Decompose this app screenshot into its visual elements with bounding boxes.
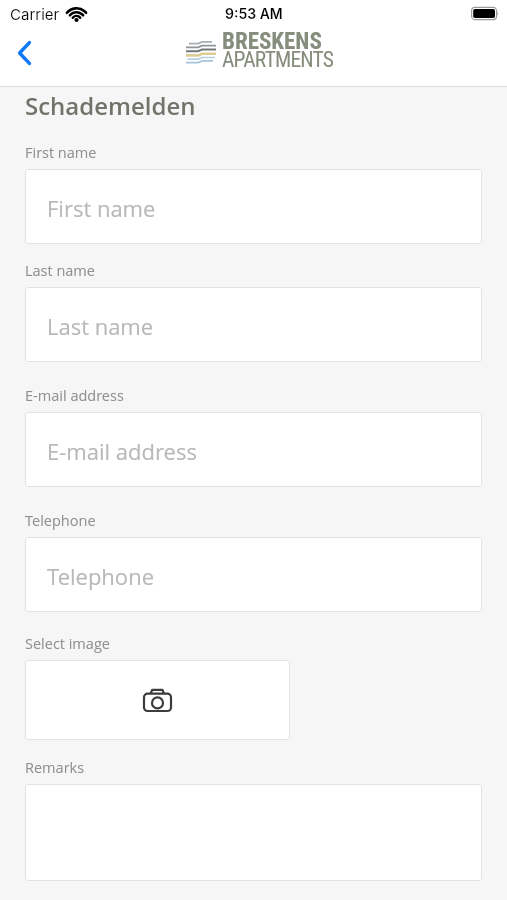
button[interactable]: First name [25,169,482,244]
button[interactable] [25,660,290,740]
staticText: First name [47,193,156,223]
staticText: First name [25,143,97,163]
button[interactable]: E-mail address [25,412,482,487]
staticText: Last name [25,261,95,281]
button[interactable]: Telephone [25,537,482,612]
staticText: BRESKENS [222,28,322,55]
staticText: Last name [47,311,154,341]
staticText: Telephone [25,511,96,531]
staticText: E-mail address [25,386,124,406]
staticText: Schademelden [25,89,196,122]
button[interactable] [25,784,482,881]
staticText: APARTMENTS [222,47,334,72]
staticText: 9:53 AM [225,5,283,22]
staticText: Select image [25,634,110,654]
staticText: E-mail address [47,436,197,466]
staticText: Telephone [47,561,155,591]
button[interactable]: Last name [25,287,482,362]
staticText: Remarks [25,758,85,778]
staticText: Carrier [10,5,60,23]
button[interactable] [6,31,42,75]
